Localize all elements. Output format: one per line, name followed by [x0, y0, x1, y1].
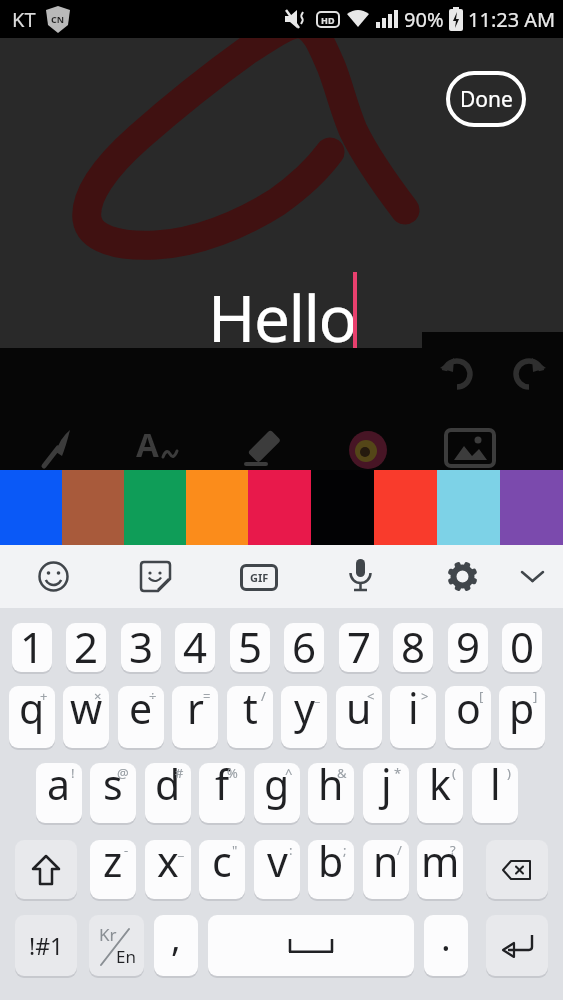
button[interactable]: m	[417, 840, 463, 899]
button[interactable]: g	[254, 763, 300, 823]
staticText: ]	[533, 687, 538, 705]
button[interactable]: p	[499, 686, 545, 748]
staticText: a	[47, 763, 71, 812]
button[interactable]	[244, 430, 284, 468]
button[interactable]: v	[254, 840, 300, 899]
staticText: 5	[238, 623, 263, 667]
staticText: _	[314, 687, 320, 705]
button[interactable]	[40, 430, 76, 470]
button[interactable]	[520, 569, 545, 584]
staticText: <	[367, 687, 375, 705]
button[interactable]: 5	[230, 623, 270, 672]
button[interactable]: 3	[121, 623, 161, 672]
staticText: o	[456, 686, 481, 736]
button[interactable]: .	[424, 915, 468, 976]
button[interactable]: x	[145, 840, 191, 899]
staticText: A	[136, 422, 159, 467]
staticText: s	[103, 763, 123, 812]
button[interactable]	[140, 561, 171, 592]
staticText: t	[243, 686, 258, 736]
button[interactable]: k	[417, 763, 463, 823]
button[interactable]: GIF	[240, 564, 278, 591]
button[interactable]: o	[445, 686, 491, 748]
button[interactable]	[208, 915, 414, 976]
button[interactable]: h	[308, 763, 354, 823]
button[interactable]: f	[199, 763, 245, 823]
staticText: Kr	[99, 923, 117, 946]
button[interactable]: 4	[175, 623, 215, 672]
staticText: h	[318, 763, 344, 812]
button[interactable]: 2	[66, 623, 106, 672]
button[interactable]	[15, 840, 77, 899]
button[interactable]: w	[63, 686, 109, 748]
staticText: e	[129, 686, 153, 736]
staticText: ,	[171, 915, 181, 962]
button[interactable]: c	[199, 840, 245, 899]
button[interactable]: !#1	[15, 915, 77, 976]
staticText: n	[373, 840, 399, 889]
staticText: Done	[460, 85, 513, 114]
button[interactable]: d	[145, 763, 191, 823]
button[interactable]: e	[118, 686, 164, 748]
button[interactable]: A	[136, 422, 180, 468]
button[interactable]: b	[308, 840, 354, 899]
button[interactable]	[446, 430, 494, 468]
button[interactable]	[349, 559, 372, 593]
button[interactable]: 9	[448, 623, 488, 672]
button[interactable]: 1	[12, 623, 52, 672]
button[interactable]: z	[90, 840, 136, 899]
staticText: CN	[51, 13, 65, 25]
button[interactable]: q	[9, 686, 55, 748]
staticText: HD	[321, 14, 335, 26]
staticText: 0	[510, 623, 535, 667]
staticText: .	[441, 915, 451, 962]
button[interactable]	[348, 430, 388, 470]
button[interactable]: Kr	[89, 915, 144, 976]
button[interactable]: y	[281, 686, 327, 748]
staticText: 11:23 AM	[468, 6, 556, 33]
staticText: _	[178, 841, 184, 859]
button[interactable]: ,	[154, 915, 198, 976]
button[interactable]	[440, 356, 473, 389]
button[interactable]	[486, 840, 548, 899]
button[interactable]: i	[390, 686, 436, 748]
button[interactable]: s	[90, 763, 136, 823]
staticText: )	[507, 764, 511, 782]
staticText: q	[19, 686, 45, 736]
button[interactable]: a	[36, 763, 82, 823]
button[interactable]: 0	[502, 623, 542, 672]
button[interactable]: Done	[446, 71, 526, 127]
staticText: /	[261, 687, 266, 705]
button[interactable]: 6	[284, 623, 324, 672]
staticText: p	[509, 686, 535, 736]
button[interactable]	[38, 561, 69, 592]
button[interactable]: l	[472, 763, 518, 823]
button[interactable]: t	[227, 686, 273, 748]
staticText: +	[40, 687, 48, 705]
staticText: ÷	[149, 687, 157, 705]
button[interactable]: r	[172, 686, 218, 748]
staticText: GIF	[250, 570, 269, 585]
button[interactable]: j	[363, 763, 409, 823]
button[interactable]: 8	[393, 623, 433, 672]
staticText: x	[157, 840, 179, 889]
staticText: ^	[285, 764, 293, 782]
staticText: w	[70, 686, 103, 736]
staticText: :	[289, 841, 293, 859]
button[interactable]	[486, 915, 548, 976]
button[interactable]: 7	[339, 623, 379, 672]
staticText: 8	[401, 623, 426, 667]
button[interactable]: u	[336, 686, 382, 748]
button[interactable]: n	[363, 840, 409, 899]
button[interactable]	[513, 356, 546, 389]
button[interactable]	[447, 561, 478, 592]
